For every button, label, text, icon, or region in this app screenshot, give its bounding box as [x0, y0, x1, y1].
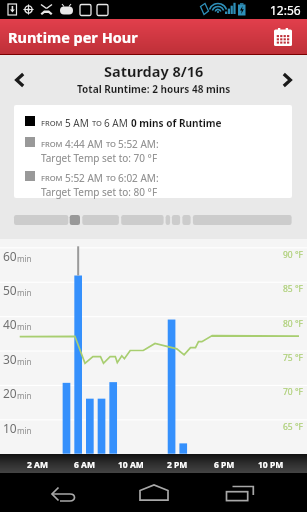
staticText: 50: [3, 282, 17, 298]
staticText: 90 °F: [283, 249, 303, 261]
staticText: 6 AM: [104, 116, 131, 130]
staticText: 85 °F: [283, 283, 303, 295]
staticText: TO: [106, 173, 118, 183]
staticText: 6 AM: [74, 459, 95, 471]
staticText: 10: [3, 420, 17, 436]
staticText: 40: [3, 316, 17, 332]
staticText: 2 PM: [167, 459, 188, 471]
staticText: 4:44 AM: [65, 137, 106, 151]
staticText: min: [17, 356, 32, 367]
staticText: 60: [3, 248, 17, 264]
button[interactable]: Previous day: [0, 60, 40, 100]
staticText: min: [17, 425, 32, 436]
staticText: 5:52 AM: [65, 171, 106, 185]
staticText: Target Temp set to: 70 °F: [41, 151, 158, 165]
staticText: 0 mins of Runtime: [131, 116, 222, 130]
staticText: TO: [106, 139, 118, 149]
staticText: TO: [92, 118, 104, 128]
staticText: Target Temp set to: 80 °F: [41, 185, 158, 199]
staticText: Total Runtime: 2 hours 48 mins: [77, 82, 231, 96]
staticText: 2 AM: [27, 459, 48, 471]
staticText: 10 PM: [258, 459, 284, 471]
button[interactable]: Back: [36, 473, 92, 512]
staticText: min: [17, 390, 32, 401]
staticText: min: [17, 287, 32, 298]
staticText: FROM: [41, 173, 65, 183]
staticText: 12:56: [270, 2, 301, 18]
staticText: FROM: [41, 118, 65, 128]
staticText: 30: [3, 351, 17, 367]
staticText: 70 °F: [283, 386, 303, 398]
staticText: 80 °F: [283, 318, 303, 330]
staticText: min: [17, 253, 32, 264]
button[interactable]: Pick date: [270, 24, 296, 50]
button[interactable]: Next day: [267, 60, 307, 100]
staticText: 6:02 AM:: [118, 171, 159, 185]
staticText: 65 °F: [283, 421, 303, 433]
staticText: 20: [3, 385, 17, 401]
staticText: 5 AM: [65, 116, 92, 130]
button[interactable]: Home: [126, 473, 182, 512]
button[interactable]: Day timeline: [14, 215, 292, 225]
staticText: 5:52 AM:: [118, 137, 159, 151]
staticText: min: [17, 321, 32, 332]
staticText: FROM: [41, 139, 65, 149]
staticText: Saturday 8/16: [104, 61, 204, 81]
staticText: 6 PM: [214, 459, 235, 471]
staticText: 75 °F: [283, 352, 303, 364]
staticText: Runtime per Hour: [8, 27, 138, 47]
button[interactable]: [14, 105, 292, 198]
staticText: 10 AM: [118, 459, 144, 471]
button[interactable]: Recents: [215, 473, 271, 512]
